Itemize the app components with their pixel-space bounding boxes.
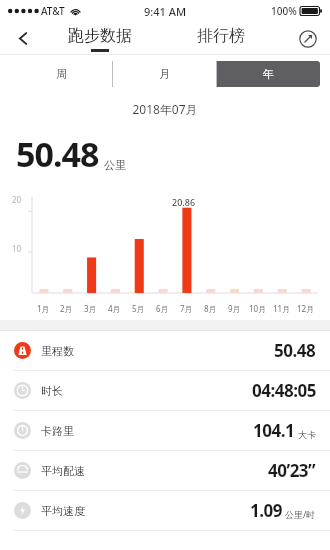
- staticText: 时长: [41, 384, 63, 398]
- button[interactable]: Back: [6, 22, 40, 55]
- staticText: 1.09: [250, 499, 282, 522]
- staticText: 1月: [37, 303, 50, 314]
- staticText: 100%: [271, 4, 297, 18]
- button[interactable]: 平均配速: [0, 451, 330, 491]
- button[interactable]: 里程数: [0, 331, 330, 371]
- staticText: 里程数: [41, 344, 74, 358]
- button[interactable]: 时长: [0, 371, 330, 411]
- staticText: 跑步数据: [68, 26, 132, 46]
- staticText: 平均配速: [41, 464, 85, 478]
- staticText: 年: [263, 67, 274, 81]
- staticText: 月: [159, 67, 170, 81]
- staticText: 8月: [204, 303, 217, 314]
- button[interactable]: 月: [113, 61, 216, 87]
- staticText: 9:41 AM: [144, 4, 187, 19]
- staticText: 10月: [249, 303, 267, 314]
- staticText: 平均速度: [41, 504, 85, 518]
- staticText: 11月: [273, 303, 291, 314]
- staticText: 20: [12, 194, 22, 205]
- button[interactable]: 周: [10, 61, 112, 87]
- button[interactable]: 排行榜: [197, 26, 245, 46]
- staticText: 3月: [84, 303, 97, 314]
- staticText: 周: [56, 67, 67, 81]
- staticText: 04:48:05: [252, 379, 316, 402]
- staticText: 4月: [108, 303, 121, 314]
- staticText: 6月: [156, 303, 169, 314]
- staticText: 7月: [180, 303, 193, 314]
- staticText: 50.48: [274, 339, 316, 362]
- button[interactable]: 跑步数据: [68, 26, 132, 52]
- staticText: 2018年07月: [0, 101, 330, 117]
- staticText: 104.1: [253, 419, 295, 442]
- staticText: 10: [12, 243, 22, 254]
- staticText: 50.48: [16, 131, 99, 177]
- staticText: 5月: [132, 303, 145, 314]
- button[interactable]: 卡路里: [0, 411, 330, 451]
- button[interactable]: 平均速度: [0, 491, 330, 531]
- staticText: 20.86: [172, 196, 196, 208]
- staticText: 大卡: [298, 429, 316, 440]
- staticText: 排行榜: [197, 26, 245, 46]
- staticText: AT&T: [41, 4, 65, 18]
- staticText: 40’23”: [268, 459, 316, 482]
- button[interactable]: Share: [293, 24, 323, 54]
- staticText: 9月: [228, 303, 241, 314]
- button[interactable]: 年: [217, 61, 320, 87]
- staticText: 卡路里: [41, 424, 74, 438]
- staticText: 12月: [297, 303, 315, 314]
- staticText: 公里: [104, 158, 126, 172]
- staticText: 2月: [60, 303, 73, 314]
- staticText: 公里/时: [285, 508, 316, 520]
